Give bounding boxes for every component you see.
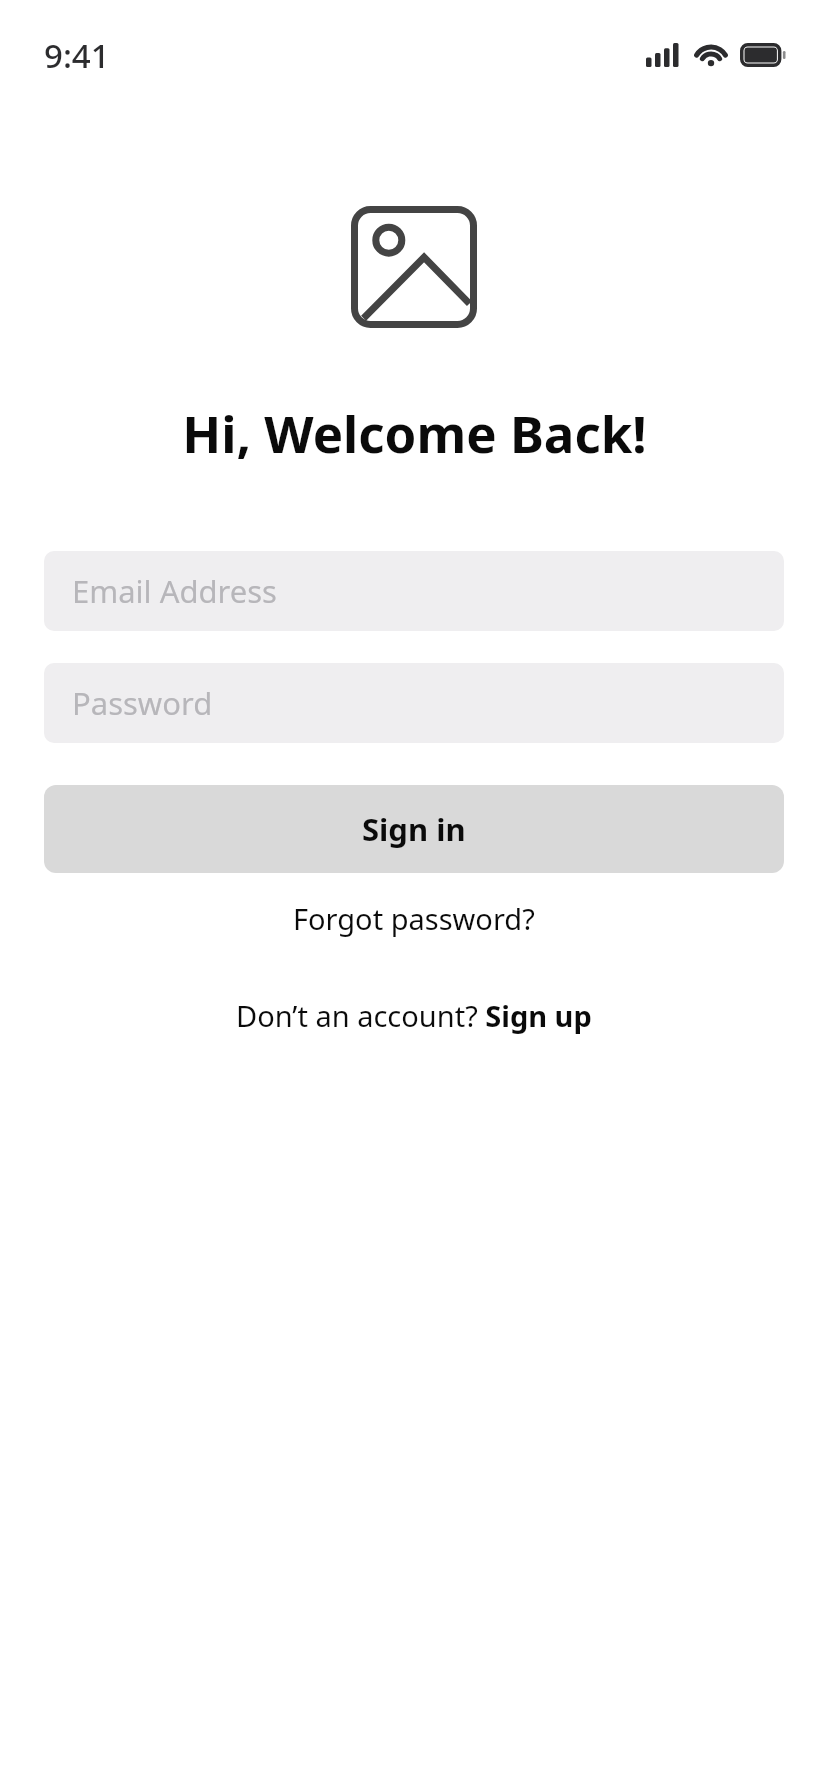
button[interactable]: Email Address bbox=[44, 551, 784, 631]
button[interactable]: Don’t an account? Sign up bbox=[218, 984, 610, 1047]
staticText: Hi, Welcome Back! bbox=[182, 398, 647, 467]
staticText: Password bbox=[72, 682, 213, 724]
button[interactable]: Password bbox=[44, 663, 784, 743]
staticText: Don’t an account? Sign up bbox=[236, 996, 592, 1035]
staticText: 9:41 bbox=[44, 33, 110, 78]
staticText: Sign in bbox=[362, 808, 466, 850]
staticText: Email Address bbox=[72, 570, 277, 612]
button[interactable]: Sign in bbox=[44, 785, 784, 873]
other: App logo bbox=[351, 206, 477, 328]
button[interactable]: Forgot password? bbox=[275, 887, 553, 950]
staticText: Forgot password? bbox=[293, 899, 535, 938]
